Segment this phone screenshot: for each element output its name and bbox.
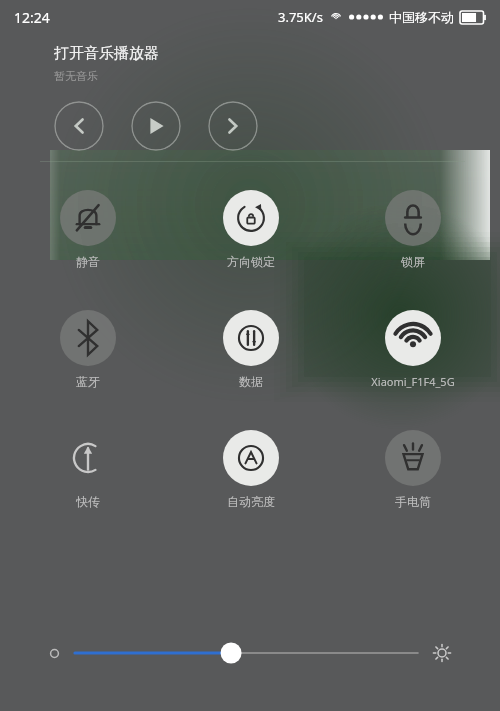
button[interactable]: 静音 xyxy=(30,190,145,269)
staticText: 12:24 xyxy=(14,8,50,27)
button[interactable]: 方向锁定 xyxy=(193,190,308,269)
staticText: 方向锁定 xyxy=(227,254,275,269)
staticText: 数据 xyxy=(239,374,263,389)
staticText: 打开音乐播放器 xyxy=(54,44,159,63)
staticText: 自动亮度 xyxy=(227,494,275,509)
staticText: 中国移不动 xyxy=(389,9,454,25)
button[interactable]: Next xyxy=(208,101,258,151)
staticText: 静音 xyxy=(76,254,100,269)
staticText: 暂无音乐 xyxy=(54,69,98,83)
button[interactable]: 快传 xyxy=(30,430,145,509)
staticText: 手电筒 xyxy=(395,494,431,509)
staticText: Xiaomi_F1F4_5G xyxy=(371,374,455,389)
button[interactable]: Previous xyxy=(54,101,104,151)
staticText: 锁屏 xyxy=(401,254,425,269)
button[interactable]: Play xyxy=(131,101,181,151)
staticText: 3.75K/s xyxy=(278,8,323,26)
button[interactable]: 锁屏 xyxy=(355,190,470,269)
button[interactable]: 手电筒 xyxy=(355,430,470,509)
button[interactable]: Brightness xyxy=(48,633,452,673)
staticText: 快传 xyxy=(76,494,100,509)
button[interactable]: 自动亮度 xyxy=(193,430,308,509)
button[interactable]: 蓝牙 xyxy=(30,310,145,389)
button[interactable]: Xiaomi_F1F4_5G xyxy=(355,310,470,389)
button[interactable]: 数据 xyxy=(193,310,308,389)
staticText: 蓝牙 xyxy=(76,374,100,389)
